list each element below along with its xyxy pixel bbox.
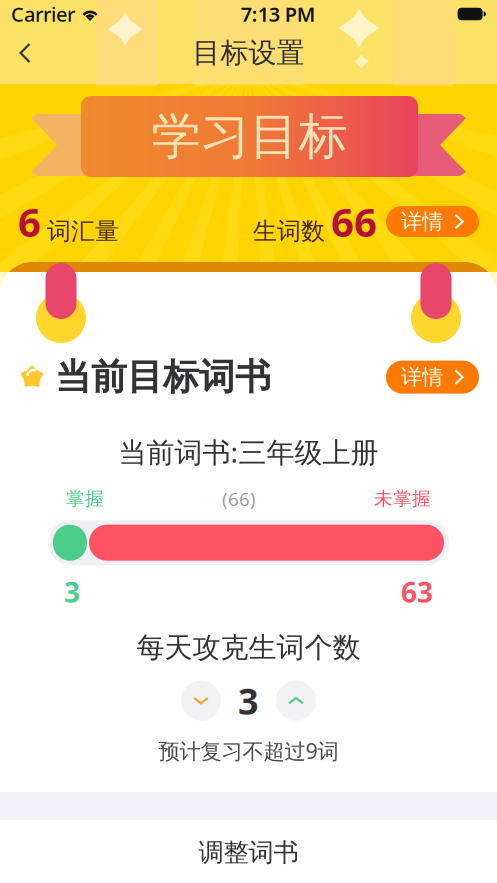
- button[interactable]: 详情: [386, 206, 479, 237]
- button[interactable]: 详情: [386, 361, 479, 394]
- staticText: 3: [64, 573, 80, 610]
- staticText: (66): [222, 486, 256, 511]
- staticText: 预计复习不超过9词: [158, 737, 338, 765]
- staticText: 调整词书: [198, 837, 298, 868]
- staticText: 生词数: [253, 217, 325, 246]
- staticText: 6: [18, 195, 41, 248]
- staticText: 词汇量: [47, 217, 119, 246]
- button[interactable]: Back: [0, 34, 50, 72]
- staticText: Carrier: [11, 1, 75, 27]
- staticText: 目标设置: [192, 36, 304, 70]
- staticText: 7:13 PM: [241, 1, 316, 27]
- staticText: 详情: [401, 208, 443, 235]
- staticText: 3: [238, 677, 259, 725]
- button[interactable]: Decrease: [181, 681, 221, 721]
- staticText: 未掌握: [374, 487, 431, 510]
- staticText: 学习目标: [151, 106, 347, 167]
- staticText: 当前目标词书: [55, 355, 271, 399]
- staticText: 每天攻克生词个数: [136, 630, 360, 665]
- staticText: 当前词书:三年级上册: [118, 433, 378, 470]
- staticText: 63: [401, 573, 433, 610]
- button[interactable]: Increase: [276, 681, 316, 721]
- staticText: 掌握: [66, 487, 104, 510]
- staticText: 详情: [401, 364, 443, 390]
- staticText: 66: [331, 195, 377, 248]
